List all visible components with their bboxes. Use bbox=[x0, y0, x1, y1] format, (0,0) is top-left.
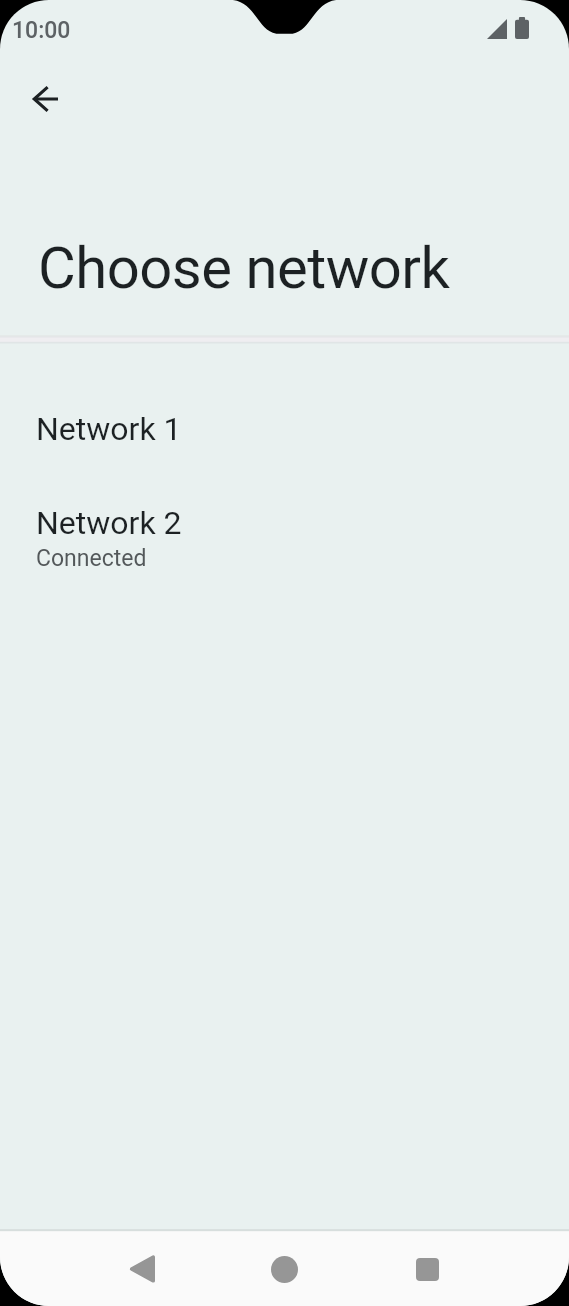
button[interactable]: Navigate up bbox=[21, 75, 69, 123]
button[interactable]: Home bbox=[260, 1245, 308, 1293]
button[interactable]: Network 2 bbox=[0, 471, 569, 591]
button[interactable]: Network 1 bbox=[0, 345, 569, 471]
staticText: Choose network bbox=[38, 234, 450, 302]
staticText: Network 1 bbox=[36, 410, 182, 448]
staticText: Connected bbox=[36, 545, 147, 572]
button[interactable]: Back bbox=[118, 1245, 166, 1293]
staticText: 10:00 bbox=[12, 17, 71, 44]
button[interactable]: Recent apps bbox=[403, 1245, 451, 1293]
staticText: Network 2 bbox=[36, 504, 182, 542]
